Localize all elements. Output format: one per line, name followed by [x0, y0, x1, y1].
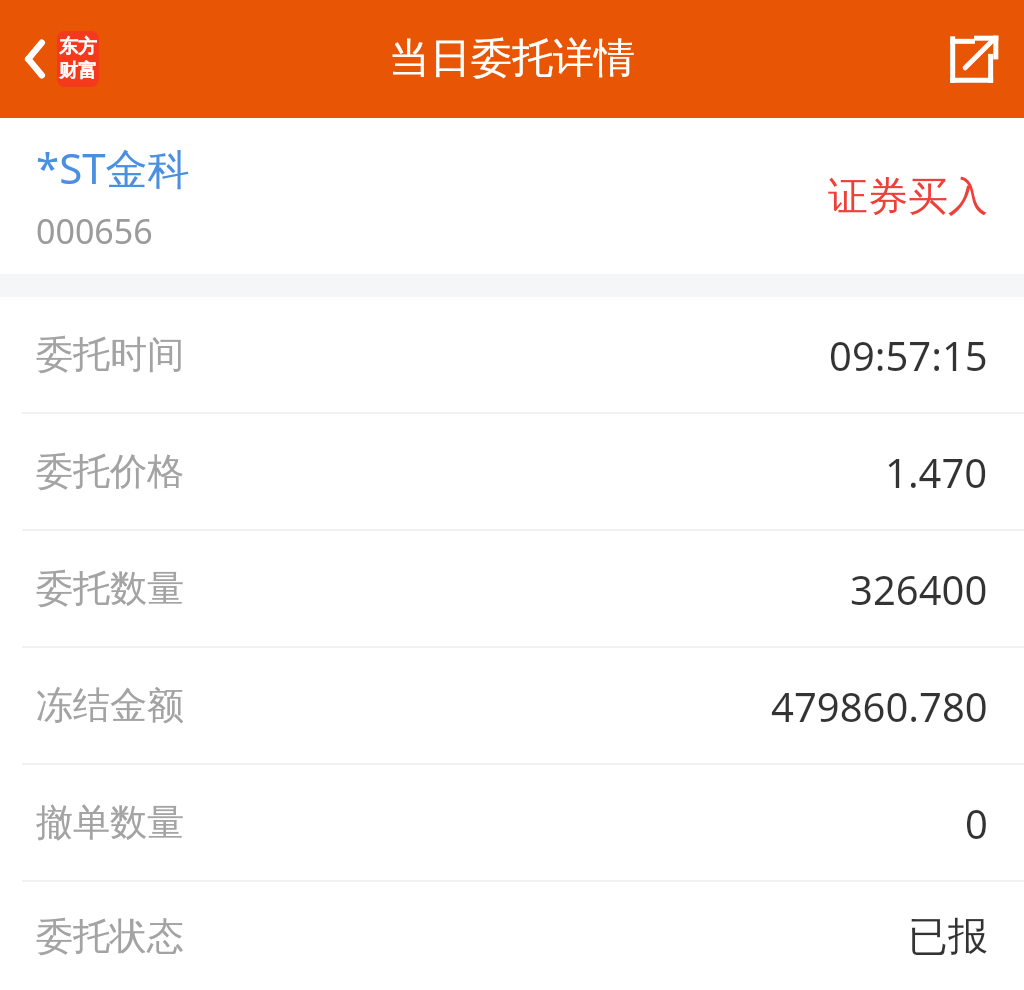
staticText: 委托数量	[36, 565, 850, 612]
button[interactable]: 委托价格	[0, 414, 1024, 529]
button[interactable]: Share	[942, 27, 1006, 91]
staticText: 委托价格	[36, 448, 885, 495]
button[interactable]: 冻结金额	[0, 648, 1024, 763]
button[interactable]: 委托状态	[0, 882, 1024, 990]
button[interactable]: 撤单数量	[0, 765, 1024, 880]
staticText: 财富	[59, 59, 97, 83]
staticText: 东方	[59, 35, 97, 59]
staticText: 1.470	[885, 445, 988, 499]
staticText: 委托时间	[36, 331, 829, 378]
staticText: 09:57:15	[829, 328, 988, 382]
staticText: 479860.780	[771, 679, 988, 733]
staticText: 冻结金额	[36, 682, 771, 729]
staticText: 当日委托详情	[389, 33, 635, 85]
button[interactable]: 委托数量	[0, 531, 1024, 646]
staticText: 委托状态	[36, 913, 908, 960]
button[interactable]: Back	[18, 25, 103, 93]
staticText: 000656	[36, 208, 153, 254]
button[interactable]: *ST金科	[0, 118, 1024, 274]
button[interactable]: 委托时间	[0, 297, 1024, 412]
staticText: 撤单数量	[36, 799, 965, 846]
staticText: 326400	[850, 562, 988, 616]
staticText: 已报	[908, 911, 988, 961]
staticText: 证券买入	[828, 171, 988, 221]
staticText: 0	[965, 796, 988, 850]
staticText: *ST金科	[36, 139, 190, 196]
